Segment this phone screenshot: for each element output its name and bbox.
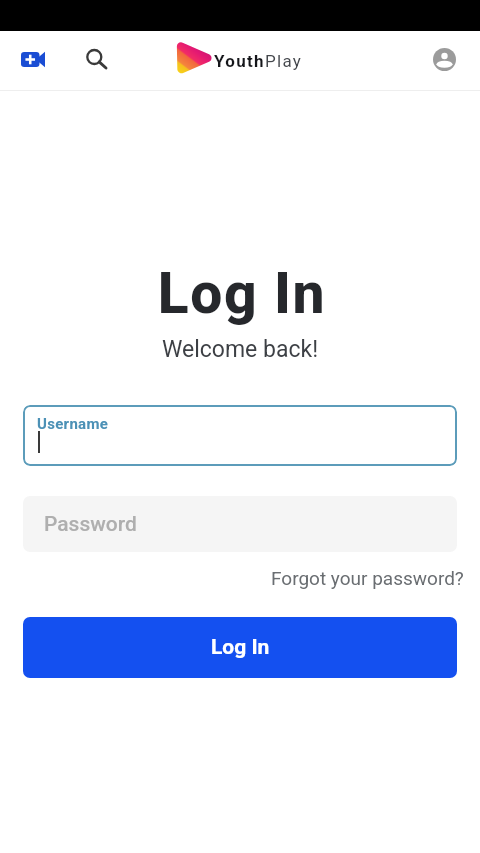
button[interactable]: Password <box>23 496 457 552</box>
button[interactable]: Log In <box>23 617 457 678</box>
staticText: Welcome back! <box>0 336 480 363</box>
button[interactable]: Forgot your password? <box>261 563 480 593</box>
button[interactable]: Username <box>23 405 457 466</box>
button[interactable]: Search <box>73 36 121 84</box>
staticText: Username <box>37 415 109 433</box>
button[interactable]: Account <box>420 35 468 83</box>
button[interactable]: Create video <box>9 35 57 83</box>
staticText: Play <box>265 51 303 71</box>
staticText: Log In <box>2 260 480 327</box>
staticText: Youth <box>214 51 265 71</box>
staticText: Log In <box>211 635 270 660</box>
staticText: Password <box>44 512 137 537</box>
